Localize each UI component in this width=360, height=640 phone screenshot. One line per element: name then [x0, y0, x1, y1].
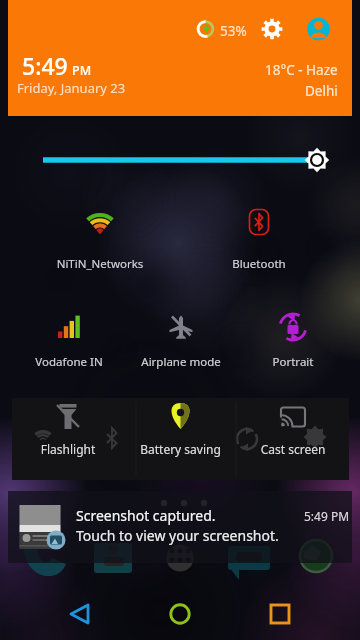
button[interactable]: NiTiN_Networks: [44, 200, 156, 276]
button[interactable]: Vodafone IN: [13, 298, 125, 374]
staticText: Delhi: [305, 82, 338, 100]
staticText: Touch to view your screenshot.: [76, 526, 279, 545]
button[interactable]: Battery saving: [124, 398, 237, 480]
button[interactable]: Settings: [256, 13, 288, 45]
button[interactable]: Portrait: [237, 298, 349, 374]
button[interactable]: 5:49: [22, 50, 92, 81]
button[interactable]: 18°C - Haze: [232, 61, 338, 100]
button[interactable]: Back: [0, 585, 120, 640]
button[interactable]: Cast screen: [237, 398, 349, 480]
staticText: Flashlight: [12, 441, 124, 457]
button[interactable]: Bluetooth: [203, 200, 315, 276]
staticText: 18°C - Haze: [265, 61, 338, 79]
button[interactable]: Brightness: [8, 138, 352, 182]
staticText: Battery saving: [124, 441, 237, 457]
staticText: Vodafone IN: [13, 354, 125, 370]
staticText: 53%: [220, 22, 247, 40]
staticText: Friday, January 23: [17, 79, 126, 97]
staticText: Bluetooth: [203, 256, 315, 272]
button[interactable]: Recents: [240, 585, 360, 640]
staticText: Airplane mode: [125, 354, 237, 370]
staticText: Portrait: [237, 354, 349, 370]
staticText: Cast screen: [237, 441, 349, 457]
button[interactable]: User profile: [303, 13, 335, 45]
staticText: 5:49: [22, 50, 68, 81]
button[interactable]: Airplane mode: [125, 298, 237, 374]
staticText: PM: [72, 62, 92, 79]
button[interactable]: Home: [120, 585, 240, 640]
staticText: Screenshot captured.: [76, 506, 216, 525]
staticText: NiTiN_Networks: [44, 256, 156, 272]
button[interactable]: Screenshot captured.: [8, 491, 352, 563]
button[interactable]: Flashlight: [12, 398, 124, 480]
staticText: 5:49 PM: [304, 508, 350, 524]
